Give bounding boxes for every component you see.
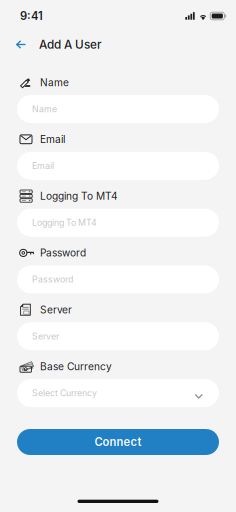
staticText: Server — [40, 304, 72, 316]
button[interactable]: Password — [17, 265, 219, 293]
button[interactable]: Email — [17, 152, 219, 180]
staticText: Email — [32, 160, 54, 171]
staticText: Logging To MT4 — [32, 217, 97, 228]
staticText: Password — [40, 247, 86, 259]
staticText: 9:41 — [20, 9, 43, 23]
staticText: Name — [40, 76, 69, 89]
staticText: Base Currency — [40, 360, 112, 373]
button[interactable]: Logging To MT4 — [17, 209, 219, 237]
button[interactable]: Connect — [17, 429, 219, 455]
button[interactable]: Select Currency — [17, 379, 219, 407]
staticText: Name — [32, 104, 57, 114]
staticText: Select Currency — [32, 388, 97, 398]
staticText: Connect — [94, 435, 141, 449]
staticText: Add A User — [39, 37, 102, 52]
staticText: Server — [32, 331, 59, 341]
staticText: Password — [32, 274, 73, 285]
button[interactable]: Name — [17, 95, 219, 123]
button[interactable]: Back — [0, 34, 39, 55]
staticText: Email — [40, 133, 65, 145]
staticText: Logging To MT4 — [40, 190, 118, 202]
button[interactable]: Server — [17, 322, 219, 350]
